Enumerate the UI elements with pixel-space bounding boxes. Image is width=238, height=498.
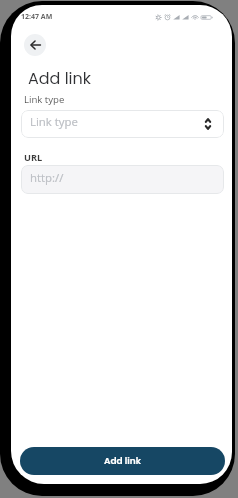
- button[interactable]: Link type: [21, 110, 224, 138]
- staticText: Link type: [24, 93, 65, 106]
- staticText: 12:47 AM: [21, 12, 53, 22]
- staticText: Add link: [104, 455, 141, 468]
- button[interactable]: Back: [24, 34, 46, 56]
- staticText: Link type: [30, 114, 78, 130]
- button[interactable]: http://: [21, 165, 224, 194]
- staticText: URL: [24, 151, 43, 164]
- staticText: Add link: [28, 67, 92, 89]
- button[interactable]: Add link: [20, 447, 225, 475]
- staticText: http://: [30, 170, 64, 186]
